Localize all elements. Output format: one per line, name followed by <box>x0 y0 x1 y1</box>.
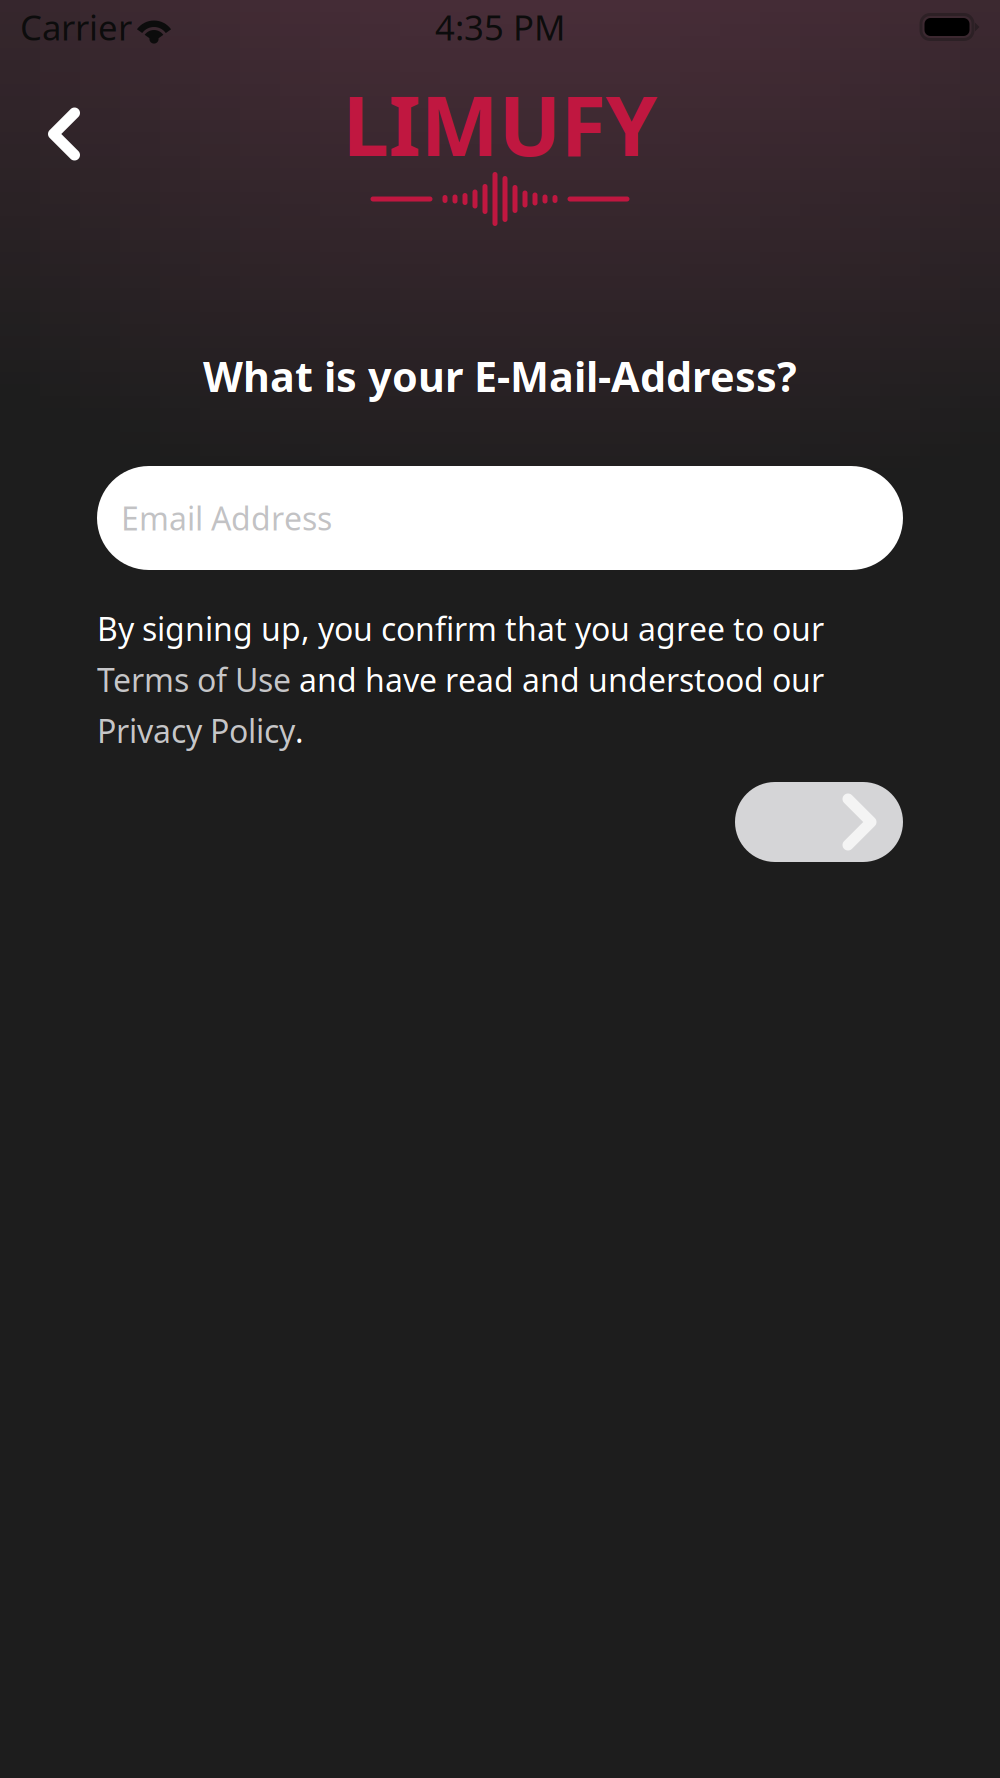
button[interactable]: Email Address <box>97 466 903 570</box>
staticText: What is your E-Mail-Address? <box>203 349 797 403</box>
staticText: Email Address <box>121 497 332 539</box>
staticText: Carrier <box>20 4 132 50</box>
staticText: and have read and understood our <box>291 658 824 701</box>
staticText: LIMUFY <box>342 69 657 179</box>
staticText: 4:35 PM <box>435 4 565 50</box>
button[interactable]: Terms of Use <box>97 658 291 701</box>
button[interactable]: Back <box>16 64 112 225</box>
staticText: Terms of Use <box>97 658 291 701</box>
button[interactable]: Privacy Policy <box>97 709 295 752</box>
staticText: . <box>295 709 304 752</box>
staticText: By signing up, you confirm that you agre… <box>97 607 824 650</box>
staticText: Privacy Policy <box>97 709 295 752</box>
button[interactable]: Next <box>735 782 903 862</box>
